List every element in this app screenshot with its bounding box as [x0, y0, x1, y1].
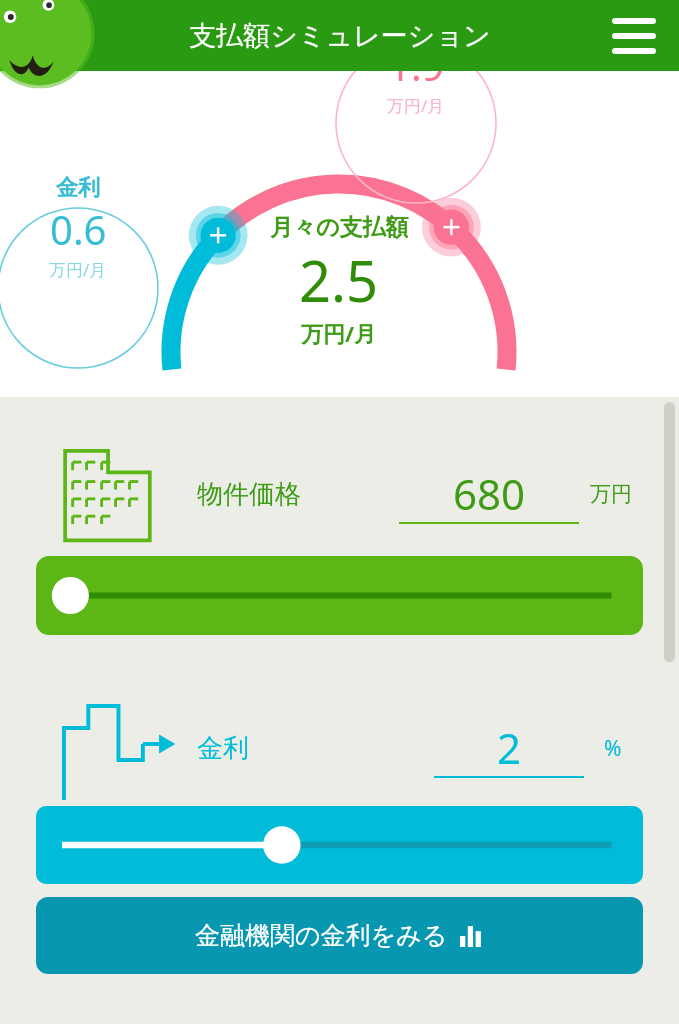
- staticText: 支払額シミュレーション: [189, 19, 491, 53]
- staticText: %: [604, 734, 622, 763]
- staticText: 2.5: [299, 242, 379, 318]
- staticText: 物件価格: [197, 478, 301, 511]
- button[interactable]: 金利スライダー: [36, 806, 643, 884]
- staticText: 680: [453, 465, 526, 522]
- button[interactable]: 金融機関の金利をみる: [36, 897, 643, 974]
- staticText: 万円/月: [387, 94, 445, 117]
- staticText: 月々の支払額: [270, 213, 409, 242]
- staticText: 万円/月: [301, 318, 377, 348]
- staticText: 金融機関の金利をみる: [195, 920, 448, 951]
- staticText: 2: [497, 719, 522, 776]
- staticText: 金利: [56, 174, 100, 202]
- button[interactable]: 物件価格スライダー: [36, 556, 643, 635]
- button[interactable]: Menu: [603, 5, 665, 67]
- staticText: 万円: [590, 481, 632, 507]
- staticText: 元金: [394, 10, 438, 38]
- staticText: 1.9: [388, 38, 445, 92]
- staticText: 0.6: [50, 202, 107, 256]
- staticText: 万円/月: [49, 258, 107, 281]
- staticText: 金利: [197, 732, 249, 765]
